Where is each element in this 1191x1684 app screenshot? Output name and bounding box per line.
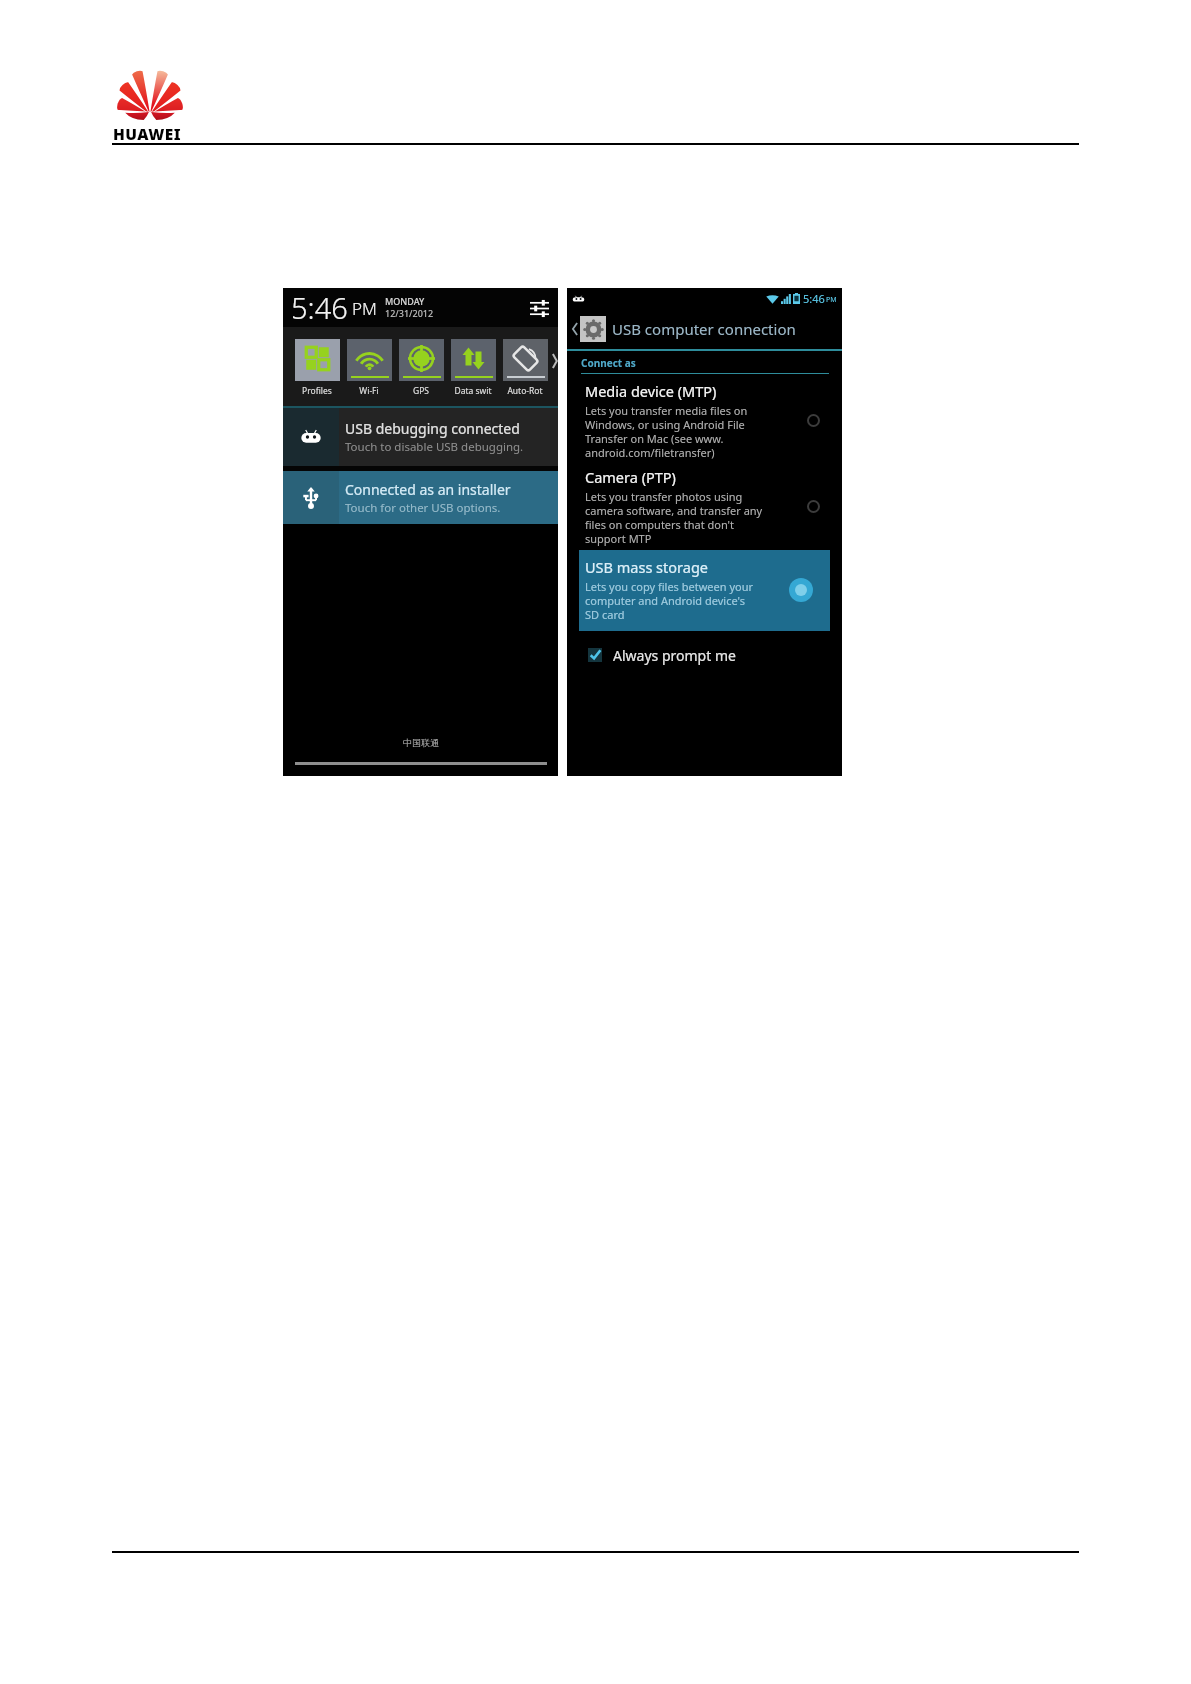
staticText: 12/31/2012 (385, 307, 434, 319)
button[interactable]: Connected as an installer (283, 471, 558, 524)
staticText: Touch for other USB options. (345, 500, 501, 516)
staticText: HUAWEI (113, 123, 181, 144)
button[interactable]: USB debugging connected (283, 408, 558, 466)
staticText: USB mass storage (585, 557, 708, 577)
staticText: Touch to disable USB debugging. (345, 439, 524, 455)
staticText: Profiles (302, 385, 332, 397)
button[interactable]: Auto-Rot (499, 339, 551, 397)
staticText: 5:46 (291, 288, 348, 327)
button[interactable]: Quick settings (527, 296, 551, 320)
button[interactable]: GPS (395, 339, 447, 397)
button[interactable]: Media device (MTP) (567, 381, 842, 460)
staticText: Lets you transfer media files on Windows… (585, 403, 748, 460)
button[interactable]: Camera (PTP) (567, 467, 842, 546)
staticText: USB debugging connected (345, 419, 520, 438)
staticText: 5:46 (803, 291, 825, 306)
button[interactable]: Wi-Fi (343, 339, 395, 397)
staticText: Lets you transfer photos using camera so… (585, 489, 763, 546)
staticText: USB computer connection (612, 319, 796, 339)
button[interactable]: Profiles (291, 339, 343, 397)
staticText: Auto-Rot (507, 385, 543, 397)
button[interactable]: USB mass storage (579, 550, 830, 631)
staticText: GPS (413, 385, 429, 397)
staticText: Connected as an installer (345, 480, 511, 499)
staticText: MONDAY (385, 295, 425, 307)
button[interactable]: Always prompt me (567, 643, 842, 667)
staticText: Wi-Fi (359, 385, 379, 397)
staticText: PM (352, 297, 377, 320)
staticText: Lets you copy files between your compute… (585, 579, 753, 622)
staticText: Always prompt me (613, 646, 736, 665)
staticText: Media device (MTP) (585, 381, 717, 401)
staticText: Data swit (454, 385, 492, 397)
button[interactable]: Back to USB computer connection (567, 309, 842, 349)
staticText: PM (826, 295, 837, 305)
staticText: Camera (PTP) (585, 467, 676, 487)
button[interactable]: Data swit (447, 339, 499, 397)
staticText: 中国联通 (403, 737, 439, 748)
button[interactable]: More quick settings (552, 354, 558, 368)
staticText: Connect as (581, 356, 636, 370)
